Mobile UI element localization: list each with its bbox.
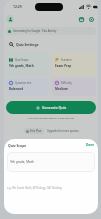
staticText: Your quiz will be ready in a few seconds xyxy=(4,116,98,119)
staticText: Free Plan xyxy=(30,129,42,133)
staticText: Done xyxy=(86,143,95,147)
button[interactable]: Settings xyxy=(87,15,95,23)
staticText: Balanced xyxy=(9,87,24,91)
staticText: Question mix xyxy=(15,81,32,85)
button[interactable]: History xyxy=(77,15,85,23)
button[interactable]: Generating for Google · Edu Activity xyxy=(6,27,96,35)
button[interactable]: Free Plan xyxy=(24,128,44,134)
staticText: Exam Prep xyxy=(55,64,72,68)
staticText: Quiz Settings xyxy=(16,42,39,47)
button[interactable]: Upgrade for more quizzes xyxy=(47,129,79,133)
staticText: e.g. 9th Grade Math, AP Biology, SAT Rea… xyxy=(7,186,62,190)
button[interactable]: Scenario xyxy=(52,52,96,76)
button[interactable]: Question mix xyxy=(6,78,49,96)
button[interactable]: 9th grade, Math xyxy=(7,152,95,172)
button[interactable]: Profile xyxy=(6,15,14,23)
staticText: Scenario xyxy=(61,58,72,62)
staticText: 12:29 xyxy=(13,4,22,9)
staticText: Medium xyxy=(55,87,68,91)
staticText: Generate Quiz xyxy=(42,105,67,110)
staticText: 9th grade, Math xyxy=(9,64,34,68)
staticText: Quiz Scope xyxy=(15,58,29,62)
button[interactable]: Quiz Scope xyxy=(6,52,49,76)
button[interactable]: Generate Quiz xyxy=(6,101,96,114)
staticText: Generating for Google · Edu Activity xyxy=(13,29,57,33)
staticText: Difficulty xyxy=(61,81,72,85)
button[interactable]: Done xyxy=(85,142,96,148)
button[interactable]: Difficulty xyxy=(52,78,96,96)
staticText: 9th grade, Math xyxy=(10,160,35,164)
staticText: Quiz Scope xyxy=(8,143,27,148)
